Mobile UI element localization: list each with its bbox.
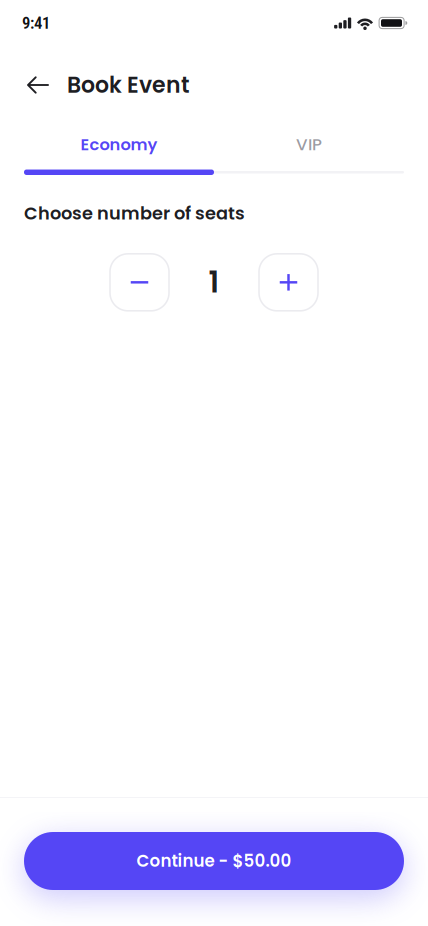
staticText: 1 (208, 262, 219, 303)
staticText: Choose number of seats (24, 201, 245, 226)
button[interactable]: Back (27, 67, 67, 103)
button[interactable]: Increase number of seats (259, 254, 318, 311)
staticText: Economy (80, 133, 157, 156)
staticText: VIP (296, 133, 322, 156)
button[interactable]: VIP (214, 128, 404, 161)
staticText: Book Event (67, 70, 190, 100)
button[interactable]: Economy (24, 128, 214, 161)
staticText: 9:41 (22, 13, 50, 33)
button[interactable]: Decrease number of seats (110, 254, 169, 311)
button[interactable]: Continue - $50.00 (24, 832, 404, 890)
staticText: Continue - $50.00 (136, 849, 291, 873)
